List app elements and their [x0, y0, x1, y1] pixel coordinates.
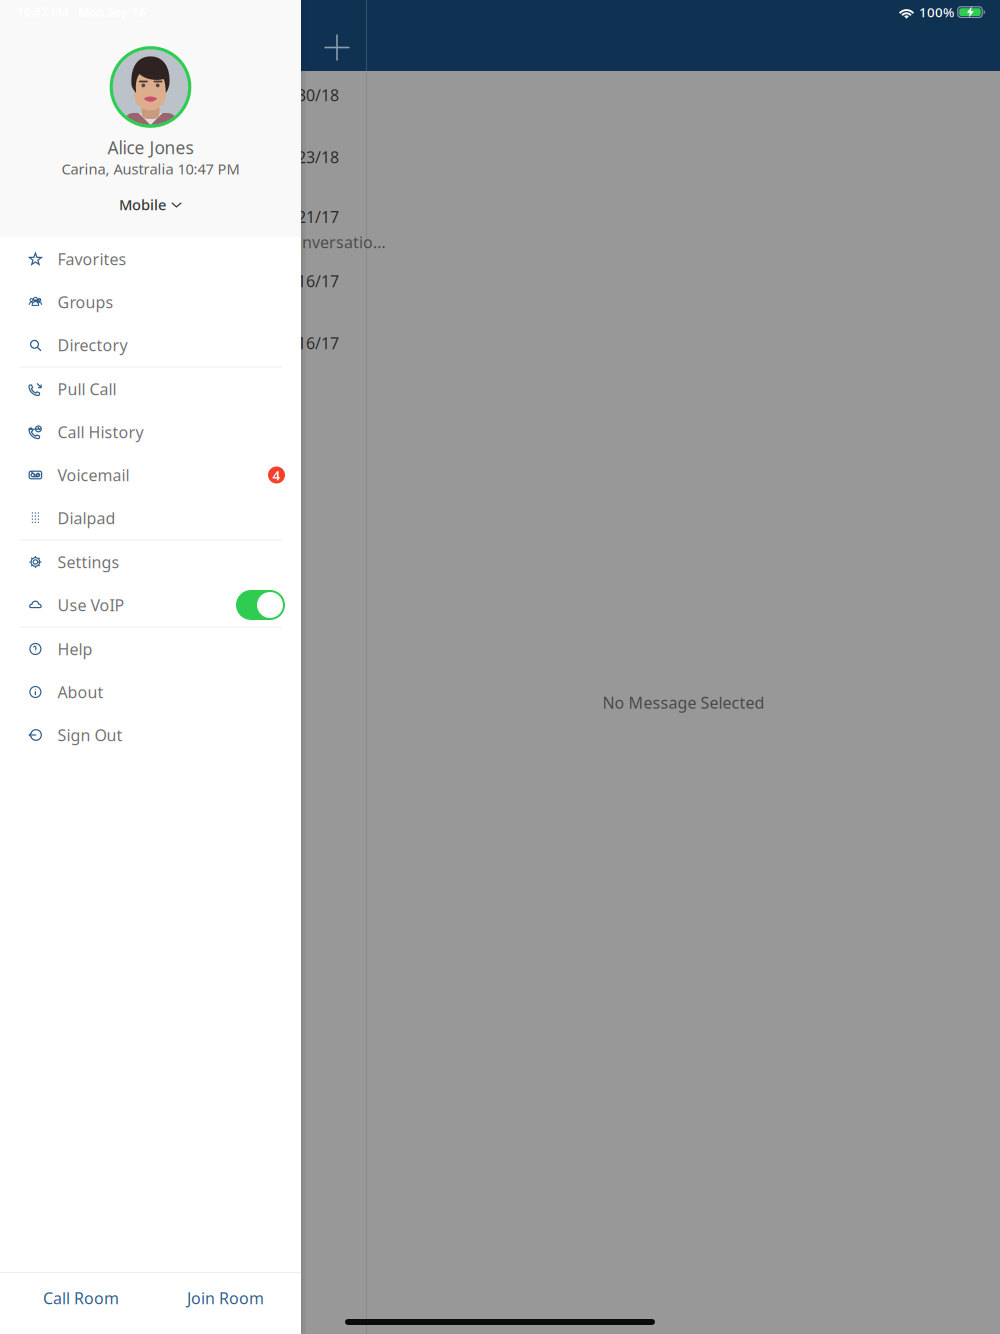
staticText: Pull Call — [57, 378, 116, 400]
button[interactable]: Sign Out — [0, 713, 301, 756]
staticText: Alice Jones — [107, 136, 193, 159]
button[interactable]: Groups — [0, 280, 301, 323]
staticText: Dialpad — [57, 507, 115, 529]
staticText: Call Room — [43, 1287, 119, 1309]
button[interactable]: Help — [0, 627, 301, 670]
button[interactable]: Pull Call — [0, 367, 301, 410]
staticText: 8/21/17 — [282, 206, 339, 227]
staticText: Settings — [57, 551, 119, 573]
staticText: 4 — [272, 466, 280, 484]
staticText: Mobile — [119, 195, 166, 214]
button[interactable]: Join Room — [156, 1273, 295, 1323]
staticText: 8/16/17 — [282, 332, 339, 354]
staticText: Directory — [57, 334, 127, 356]
staticText: Carina, Australia 10:47 PM — [61, 159, 239, 178]
button[interactable]: Use VoIP — [0, 583, 301, 626]
staticText: Sign Out — [57, 724, 122, 746]
staticText: Call History — [57, 421, 143, 443]
button[interactable]: Call Room — [6, 1273, 156, 1323]
staticText: Help — [57, 638, 92, 660]
staticText: 8/16/17 — [282, 270, 339, 292]
button[interactable]: Call History — [0, 410, 301, 453]
staticText: Use VoIP — [57, 594, 124, 616]
button[interactable]: Settings — [0, 540, 301, 583]
staticText: 9/30/18 — [282, 84, 339, 106]
staticText: 9/23/18 — [282, 146, 339, 168]
button[interactable]: Directory — [0, 323, 301, 366]
staticText: Conversatio… — [282, 231, 386, 253]
button[interactable]: Mobile — [119, 194, 182, 214]
button[interactable]: New message — [315, 25, 359, 69]
staticText: No Message Selected — [602, 692, 764, 713]
staticText: Voicemail — [57, 464, 129, 486]
button[interactable]: Favorites — [0, 237, 301, 280]
button[interactable]: About — [0, 670, 301, 713]
staticText: About — [57, 681, 103, 703]
staticText: Groups — [57, 291, 113, 313]
staticText: 100% — [919, 3, 954, 21]
staticText: Favorites — [57, 248, 126, 270]
staticText: Join Room — [187, 1287, 264, 1309]
button[interactable]: Voicemail — [0, 453, 301, 496]
button[interactable]: Dialpad — [0, 496, 301, 539]
